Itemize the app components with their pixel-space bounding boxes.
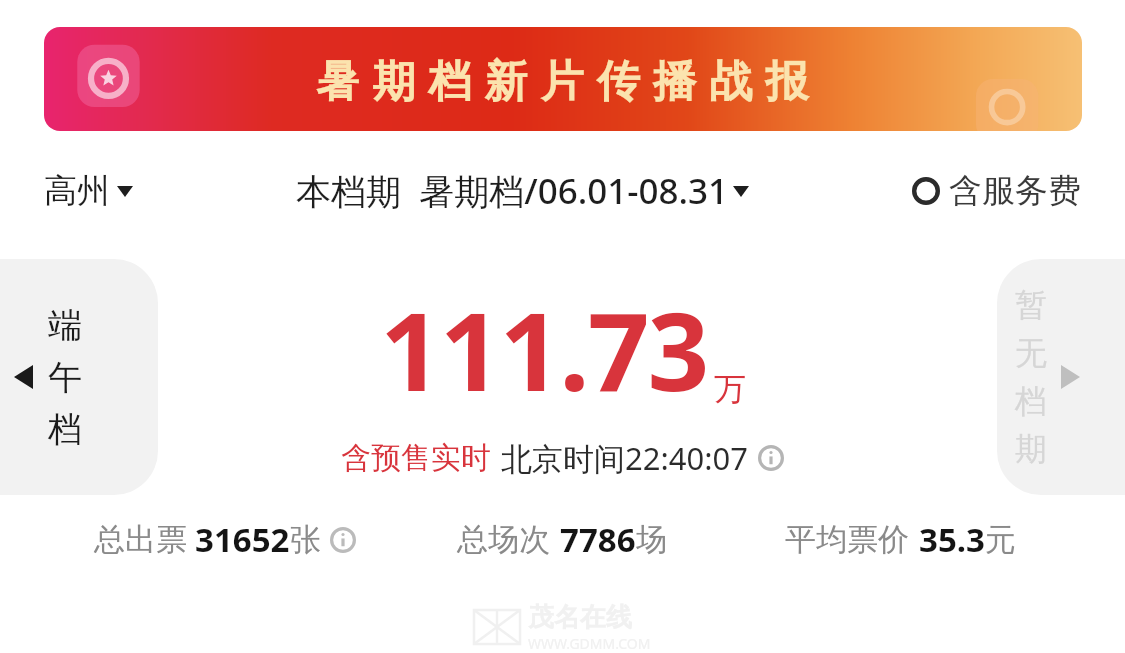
staticText: 31652	[195, 517, 290, 562]
other: 说明	[330, 527, 356, 553]
staticText: 本档期 暑期档/06.01-08.31	[296, 167, 729, 215]
button[interactable]: 暂 无 档 期	[997, 259, 1125, 495]
staticText: 7786	[560, 517, 636, 562]
staticText: 元	[985, 520, 1016, 559]
button[interactable]: 总出票	[56, 517, 393, 562]
staticText: 总场次	[457, 520, 550, 559]
button[interactable]: 总场次	[393, 517, 731, 562]
button[interactable]: 高州	[44, 170, 133, 212]
staticText: 端 午 档	[48, 304, 82, 451]
staticText: 含服务费	[949, 170, 1081, 212]
staticText: 111.73	[380, 276, 708, 423]
button[interactable]: 含服务费	[912, 170, 1081, 212]
staticText: 总出票	[94, 520, 187, 559]
staticText: 万	[714, 369, 746, 409]
staticText: 张	[290, 520, 321, 559]
button[interactable]: 暑期档新片传播战报	[44, 27, 1082, 131]
button[interactable]: 平均票价	[731, 517, 1069, 562]
staticText: 35.3	[919, 517, 985, 562]
staticText: 含预售实时	[341, 439, 491, 477]
staticText: 暂 无 档 期	[1015, 285, 1047, 469]
other: 说明	[758, 445, 784, 471]
staticText: WWW.GDMM.COM	[528, 634, 651, 653]
staticText: 暑 期 档 新 片 传 播 战 报	[316, 50, 810, 109]
button[interactable]: 本档期 暑期档/06.01-08.31	[296, 167, 749, 215]
button[interactable]: 端 午 档	[0, 259, 158, 495]
staticText: 平均票价	[785, 520, 909, 559]
staticText: 场	[636, 520, 667, 559]
staticText: 茂名在线	[528, 601, 632, 634]
staticText: 高州	[44, 170, 110, 212]
staticText: 北京时间22:40:07	[501, 437, 749, 479]
